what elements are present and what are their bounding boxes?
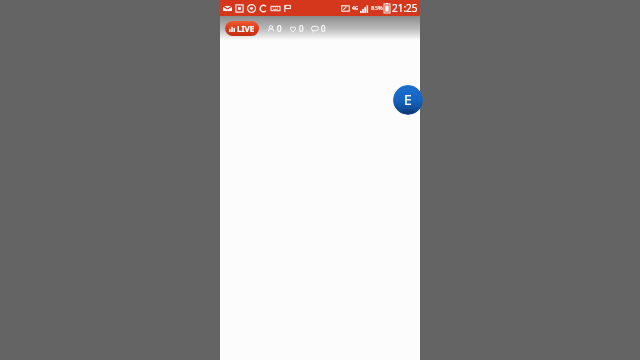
staticText: 03:54 <box>403 109 414 114</box>
staticText: LIVE <box>237 23 255 34</box>
staticText: 0 <box>321 23 326 34</box>
staticText: 4G <box>352 5 359 12</box>
button[interactable]: Likes <box>289 23 304 34</box>
staticText: 21:25 <box>392 1 418 15</box>
button[interactable]: Broadcaster profile <box>393 85 423 115</box>
staticText: E <box>404 90 412 109</box>
button[interactable]: Viewers <box>267 23 282 34</box>
staticText: 85% <box>371 4 383 12</box>
staticText: 0 <box>299 23 304 34</box>
staticText: 0 <box>277 23 282 34</box>
button[interactable]: LIVE <box>225 21 259 36</box>
button[interactable]: Comments <box>311 23 326 34</box>
